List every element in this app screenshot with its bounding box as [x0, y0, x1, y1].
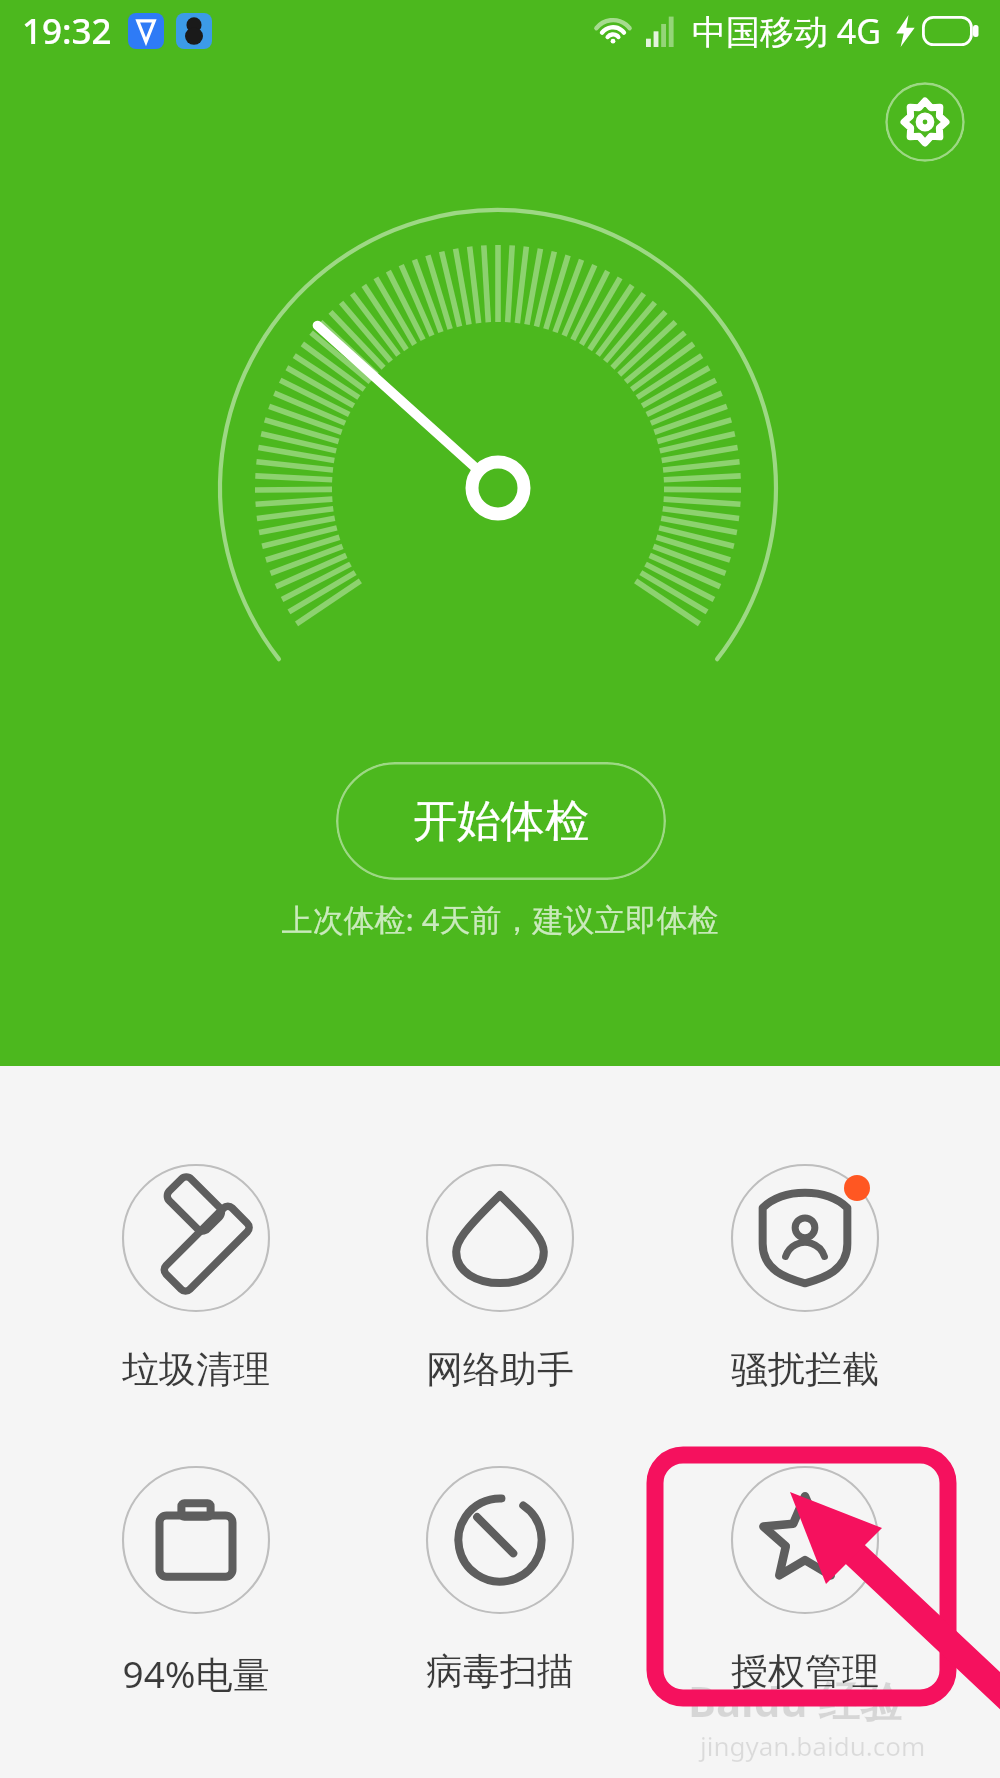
button[interactable]: 开始体检 — [336, 762, 666, 880]
button[interactable]: Settings — [885, 82, 965, 162]
button[interactable]: 网络助手 — [370, 1146, 630, 1436]
button[interactable]: 骚扰拦截 — [675, 1146, 935, 1436]
staticText: 19:32 — [22, 7, 112, 55]
staticText: 上次体检: 4天前，建议立即体检 — [281, 898, 719, 940]
button[interactable]: 94%电量 — [66, 1448, 326, 1738]
staticText: 中国移动 4G — [692, 8, 882, 54]
button[interactable]: 病毒扫描 — [370, 1448, 630, 1738]
staticText: 骚扰拦截 — [731, 1346, 879, 1393]
staticText: 开始体检 — [413, 794, 589, 849]
staticText: Baidu 经验 — [688, 1672, 903, 1729]
staticText: jingyan.baidu.com — [700, 1728, 926, 1763]
staticText: 授权管理 — [731, 1648, 879, 1695]
staticText: 网络助手 — [426, 1346, 574, 1393]
button[interactable]: 授权管理 — [675, 1448, 935, 1738]
staticText: 94%电量 — [122, 1648, 270, 1699]
staticText: 垃圾清理 — [122, 1346, 270, 1393]
button[interactable]: 垃圾清理 — [66, 1146, 326, 1436]
staticText: 病毒扫描 — [426, 1648, 574, 1695]
